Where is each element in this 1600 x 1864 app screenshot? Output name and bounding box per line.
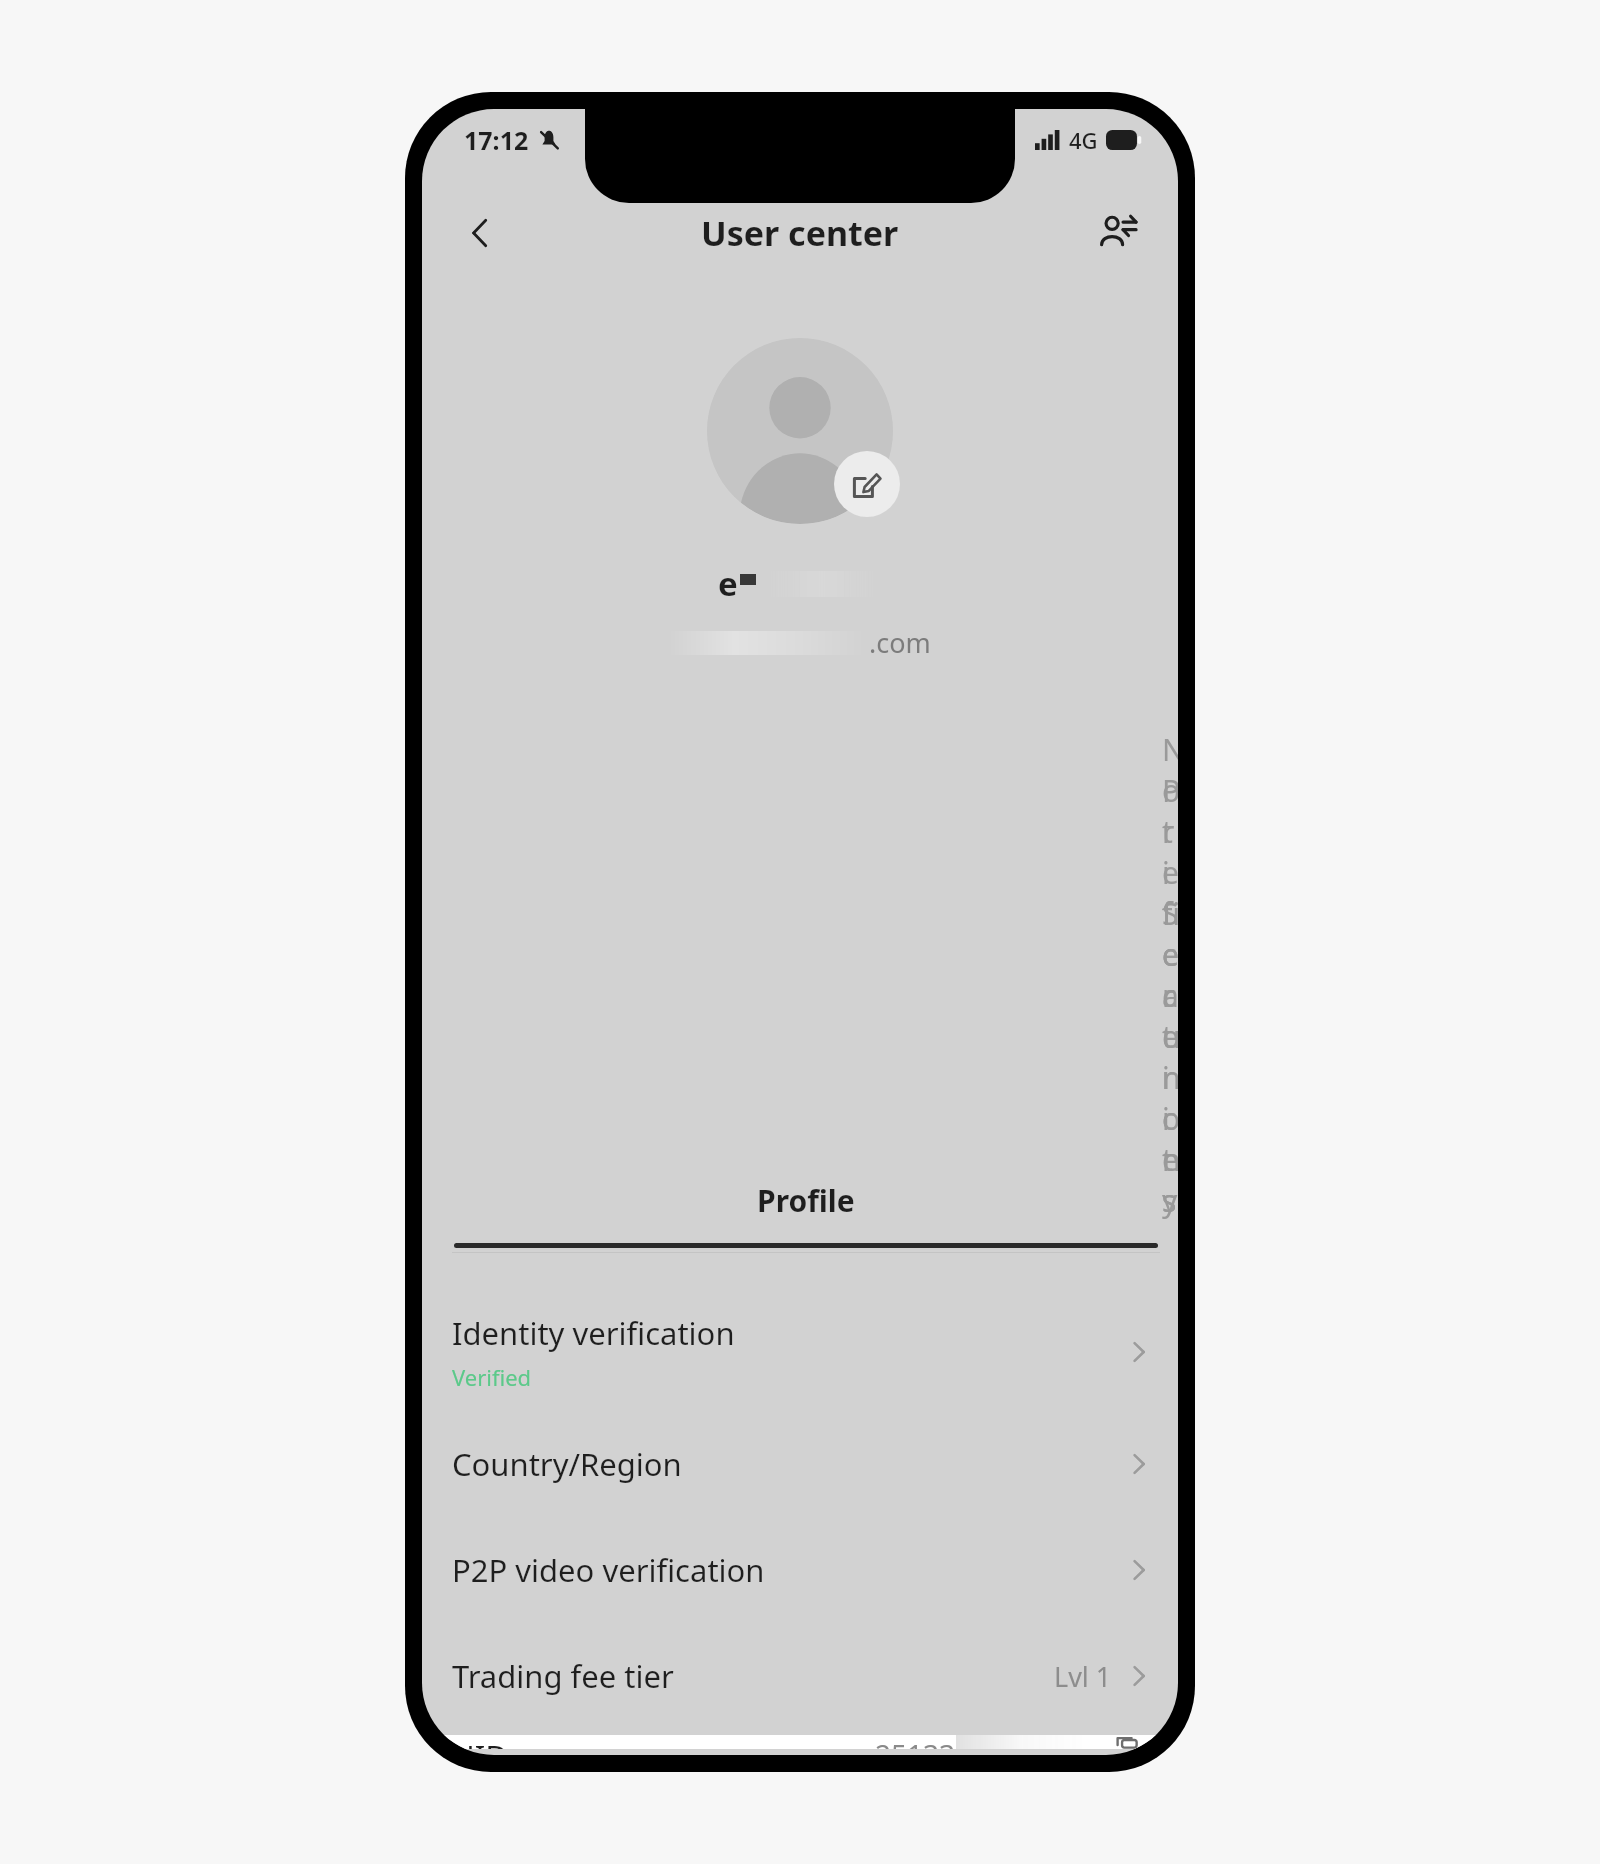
staticText: P2P video verification <box>452 1549 765 1591</box>
staticText: Verified <box>452 1362 532 1392</box>
staticText: 25133 <box>875 1735 956 1749</box>
button[interactable]: Copy UID <box>1104 1735 1148 1749</box>
staticText: Identity verification <box>452 1312 735 1354</box>
button[interactable]: Back <box>444 197 516 269</box>
staticText: User center <box>701 210 899 256</box>
staticText: 17:12 <box>464 123 529 157</box>
button[interactable]: Country/Region <box>422 1411 1178 1517</box>
staticText: 4G <box>1069 125 1098 155</box>
staticText: Trading fee tier <box>452 1655 674 1697</box>
button[interactable]: Trading fee tier <box>422 1623 1178 1729</box>
button[interactable]: Profile <box>452 1180 1160 1248</box>
button[interactable]: P2P video verification <box>422 1517 1178 1623</box>
button[interactable]: UID <box>428 1735 1172 1749</box>
staticText: UID <box>452 1735 508 1749</box>
staticText: .com <box>869 624 931 661</box>
button[interactable]: Edit profile photo <box>834 451 900 517</box>
staticText: Profile <box>757 1180 855 1221</box>
staticText: Lvl 1 <box>1054 1658 1112 1695</box>
staticText: Country/Region <box>452 1443 682 1485</box>
button[interactable]: Switch account <box>1082 197 1154 269</box>
button[interactable]: Identity verification <box>422 1293 1178 1411</box>
staticText: e <box>718 561 738 606</box>
button[interactable]: Profile photo <box>707 338 893 524</box>
